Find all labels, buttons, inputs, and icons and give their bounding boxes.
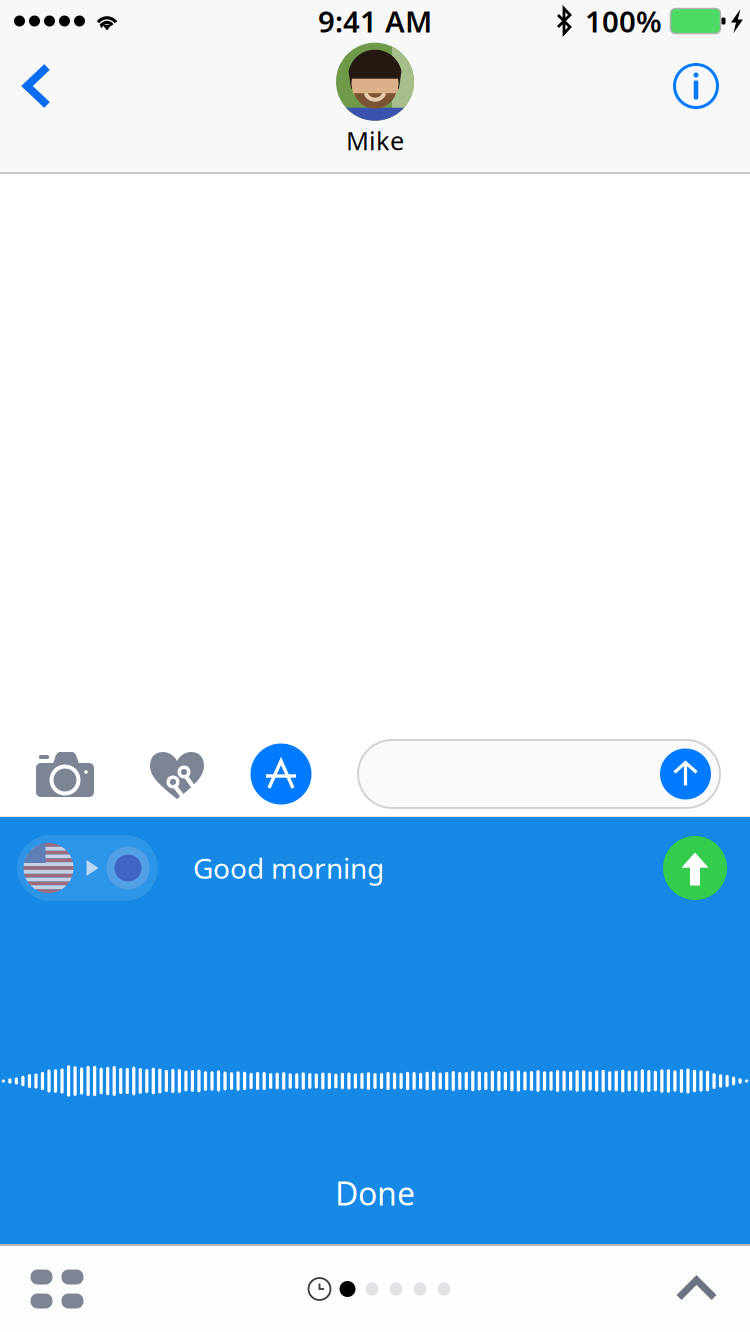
staticText: 100% <box>585 1 662 40</box>
button[interactable]: Back <box>0 36 74 136</box>
button[interactable]: Expand <box>643 1246 750 1332</box>
button[interactable]: Send <box>660 748 711 799</box>
button[interactable]: Apps <box>0 1246 114 1332</box>
button[interactable]: Done <box>0 1163 750 1223</box>
staticText: Mike <box>346 124 404 157</box>
staticText: Good morning <box>193 849 384 887</box>
button[interactable]: Send <box>663 836 727 900</box>
staticText: 9:41 AM <box>318 1 432 40</box>
button[interactable]: Digital Touch <box>130 732 224 816</box>
button[interactable]: Camera <box>0 732 130 816</box>
button[interactable]: Dictation language <box>17 835 158 901</box>
staticText: Done <box>335 1172 415 1214</box>
button[interactable]: App Store <box>224 732 338 816</box>
button[interactable]: Details <box>642 36 750 136</box>
